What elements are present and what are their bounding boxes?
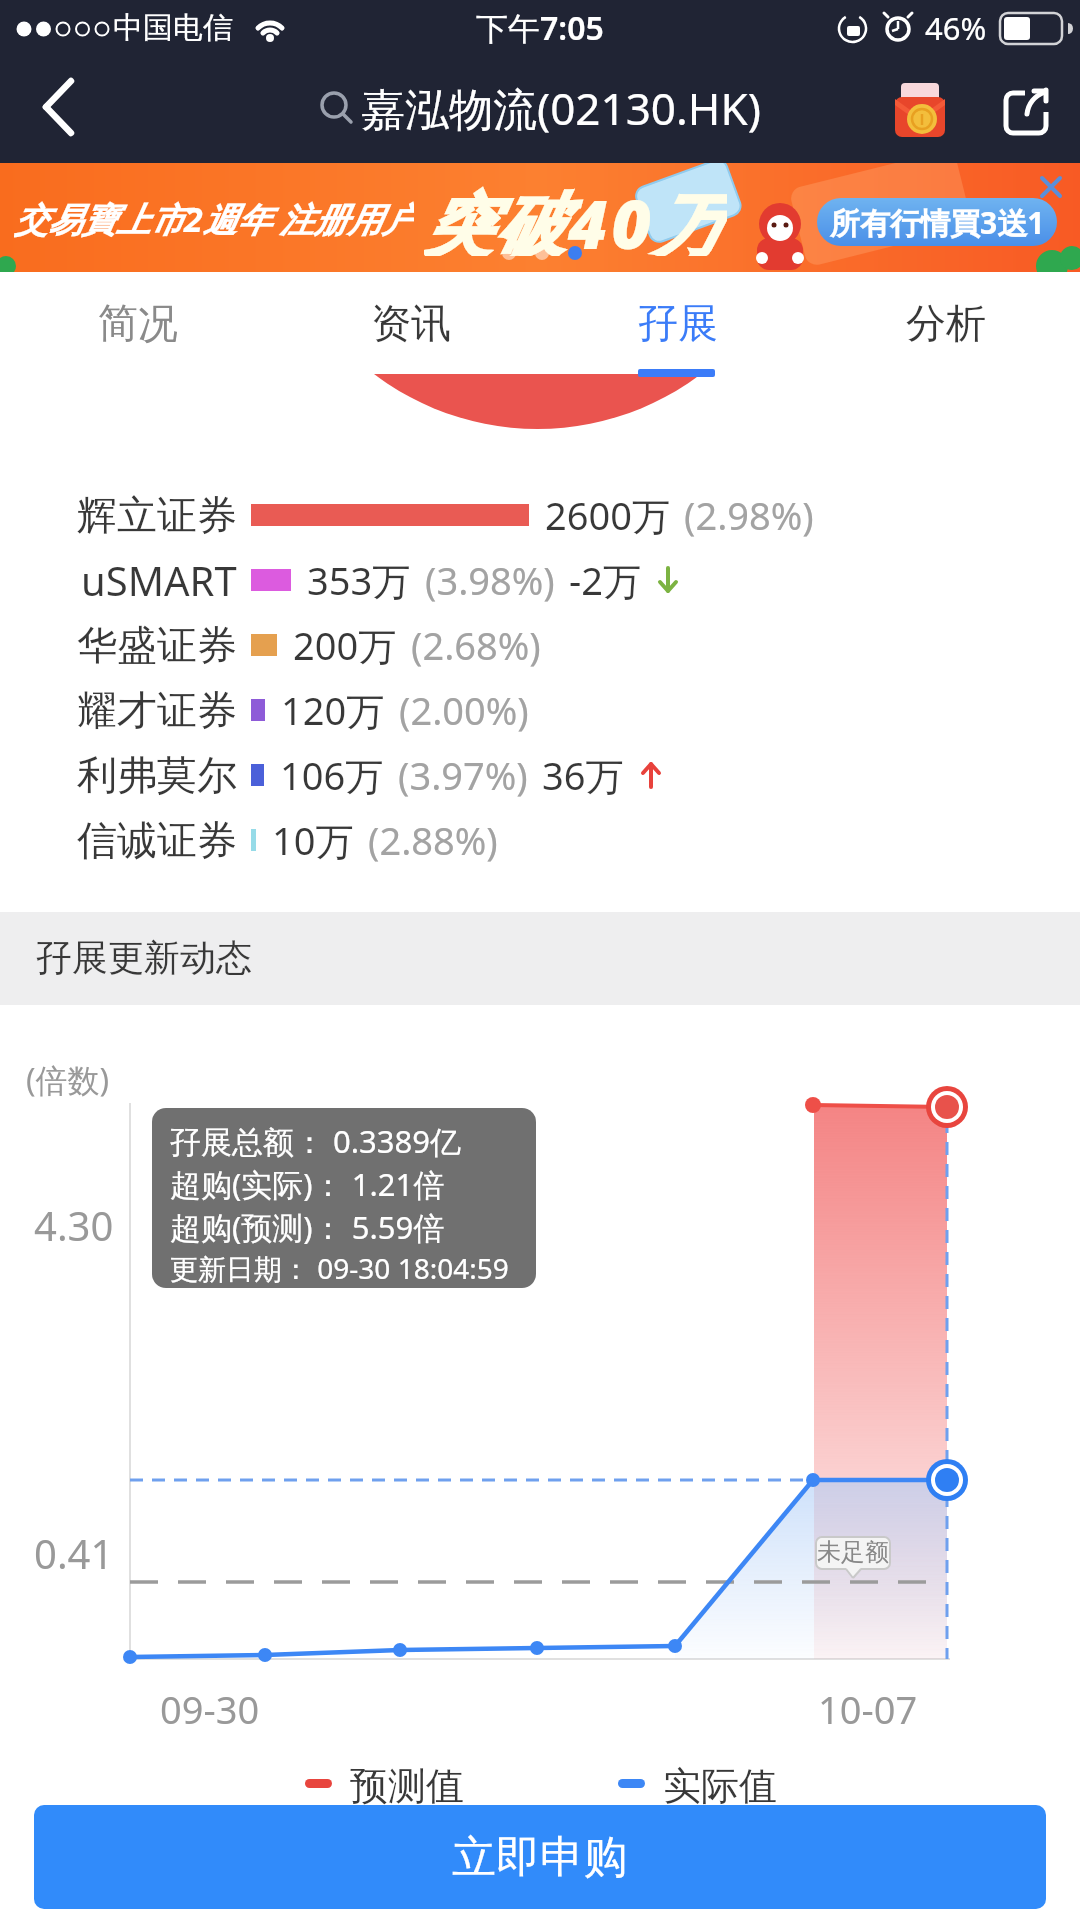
staticText: 突破40万 (424, 176, 727, 256)
staticText: 36万 (542, 749, 624, 801)
button[interactable]: 简况 (68, 285, 208, 360)
staticText: 10万 (272, 814, 354, 866)
staticText: 120万 (281, 684, 385, 736)
staticText: 超购(实际)： 1.21倍 (170, 1163, 445, 1201)
staticText: 更新日期： 09-30 18:04:59 (170, 1249, 509, 1287)
staticText: 利弗莫尔 (77, 750, 237, 800)
staticText: 分析 (906, 298, 986, 348)
staticText: (2.88%) (368, 814, 498, 866)
button[interactable]: 立即申购 (34, 1805, 1046, 1909)
staticText: 2600万 (545, 489, 670, 541)
staticText: 未足额 (817, 1537, 889, 1567)
staticText: 0.41 (34, 1526, 114, 1570)
staticText: 4.30 (34, 1198, 114, 1242)
staticText: (2.68%) (411, 619, 541, 671)
button[interactable] (893, 83, 947, 139)
staticText: 09-30 (160, 1683, 260, 1727)
staticText: 实际值 (663, 1762, 777, 1806)
staticText: 孖展总额： 0.3389亿 (170, 1120, 462, 1158)
staticText: 嘉泓物流(02130.HK) (361, 78, 761, 138)
staticText: 10-07 (818, 1683, 918, 1727)
staticText: 孖展 (638, 298, 718, 348)
button[interactable]: 所有行情買3送1 (817, 198, 1057, 246)
staticText: 耀才证券 (77, 685, 237, 735)
staticText: 中国电信 (113, 9, 233, 47)
staticText: 超购(预测)： 5.59倍 (170, 1206, 445, 1244)
staticText: 辉立证券 (77, 490, 237, 540)
staticText: (2.00%) (399, 684, 529, 736)
staticText: (2.98%) (684, 489, 814, 541)
staticText: 孖展更新动态 (36, 935, 252, 980)
staticText: -2万 (569, 554, 641, 606)
staticText: (3.98%) (425, 554, 555, 606)
button[interactable] (1003, 86, 1053, 136)
staticText: 200万 (293, 619, 397, 671)
staticText: 所有行情買3送1 (830, 202, 1045, 243)
staticText: 353万 (307, 554, 411, 606)
staticText: 立即申购 (452, 1830, 628, 1885)
staticText: 106万 (280, 749, 384, 801)
staticText: (3.97%) (398, 749, 528, 801)
staticText: 预测值 (350, 1762, 464, 1806)
staticText: 46% (925, 7, 987, 49)
staticText: 简况 (98, 298, 178, 348)
staticText: 资讯 (371, 298, 451, 348)
staticText: 交易寶上市2週年 注册用户 (14, 196, 414, 242)
button[interactable]: 孖展 (608, 285, 748, 360)
button[interactable] (20, 70, 100, 150)
button[interactable]: 分析 (876, 285, 1016, 360)
staticText: 华盛证券 (77, 620, 237, 670)
button[interactable]: 嘉泓物流(02130.HK) (280, 70, 800, 146)
staticText: (倍数) (26, 1058, 110, 1102)
button[interactable]: 资讯 (341, 285, 481, 360)
staticText: 下午7:05 (476, 6, 604, 50)
staticText: 信诚证券 (77, 815, 237, 865)
staticText: uSMART (81, 553, 237, 607)
button[interactable] (0, 163, 1080, 272)
